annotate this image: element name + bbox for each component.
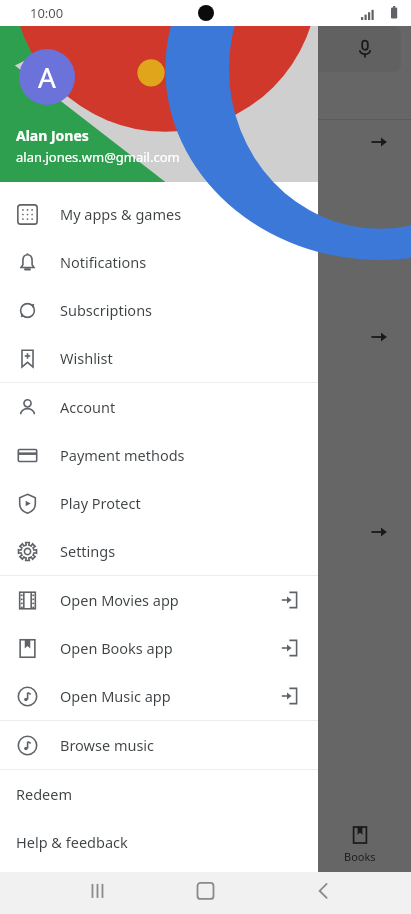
button[interactable]: Payment methods bbox=[0, 431, 318, 479]
staticText: Browse music bbox=[60, 735, 155, 755]
other: Settings bbox=[16, 540, 39, 563]
staticText: Alan Jones bbox=[16, 126, 89, 145]
other: Payment methods bbox=[16, 444, 39, 467]
other: Music bbox=[16, 685, 39, 708]
staticText: 3.7 bbox=[120, 488, 135, 502]
other: My apps and games bbox=[16, 203, 39, 226]
other: Notifications bbox=[16, 251, 39, 274]
staticText: Play Protect bbox=[60, 493, 141, 513]
button[interactable]: Account bbox=[0, 383, 318, 431]
button[interactable]: Games bbox=[29, 825, 77, 864]
button[interactable]: Notifications bbox=[0, 238, 318, 286]
staticText: Editors' Choice bbox=[16, 82, 134, 105]
staticText: VK fre bbox=[120, 260, 135, 290]
staticText: Redeem bbox=[16, 784, 73, 804]
staticText: Payment methods bbox=[60, 445, 185, 465]
staticText: Help & feedback bbox=[16, 832, 128, 852]
button[interactable]: Open Movies app bbox=[0, 576, 318, 624]
staticText: Open Books app bbox=[60, 638, 173, 658]
button[interactable]: Play Protect bbox=[0, 479, 318, 527]
button[interactable]: Wishlist bbox=[0, 334, 318, 382]
staticText: od delivery bbox=[12, 455, 69, 470]
other: Music bbox=[16, 734, 39, 757]
staticText: 3. bbox=[120, 293, 129, 307]
staticText: Settings bbox=[60, 541, 116, 561]
other: Open external app bbox=[279, 638, 299, 658]
button[interactable]: Books bbox=[338, 825, 382, 864]
other: Open Books app bbox=[16, 637, 39, 660]
button[interactable]: Redeem bbox=[0, 770, 318, 818]
button[interactable]: Music bbox=[0, 721, 318, 769]
other: Play Protect bbox=[16, 492, 39, 515]
staticText: Ti Da bbox=[120, 455, 135, 485]
button[interactable]: Open Books app bbox=[0, 624, 318, 672]
staticText: er: Caller ID, ocking & c... bbox=[12, 260, 76, 290]
staticText: 10:00 bbox=[30, 4, 64, 22]
button[interactable]: My apps and games bbox=[0, 190, 318, 238]
staticText: A bbox=[38, 58, 56, 96]
staticText: 3.6 bbox=[12, 293, 27, 307]
staticText: Games bbox=[35, 849, 71, 864]
staticText: Notifications bbox=[60, 252, 147, 272]
other: Open Movies app bbox=[16, 589, 39, 612]
button[interactable]: Help & feedback bbox=[0, 818, 318, 866]
other: Subscriptions bbox=[16, 299, 39, 322]
button[interactable]: Settings bbox=[0, 527, 318, 575]
staticText: Books bbox=[344, 849, 376, 864]
other: Account bbox=[16, 396, 39, 419]
staticText: Account bbox=[60, 397, 116, 417]
staticText: Subscriptions bbox=[60, 300, 153, 320]
other: Open external app bbox=[279, 590, 299, 610]
other: Open external app bbox=[279, 686, 299, 706]
staticText: Wishlist bbox=[60, 348, 113, 368]
staticText: Open Music app bbox=[60, 686, 171, 706]
staticText: Open Movies app bbox=[60, 590, 179, 610]
button[interactable]: Music bbox=[0, 672, 318, 720]
button[interactable]: Subscriptions bbox=[0, 286, 318, 334]
staticText: alan.jones.wm@gmail.com bbox=[16, 148, 180, 166]
staticText: My apps & games bbox=[60, 204, 182, 224]
other: Wishlist bbox=[16, 347, 39, 370]
